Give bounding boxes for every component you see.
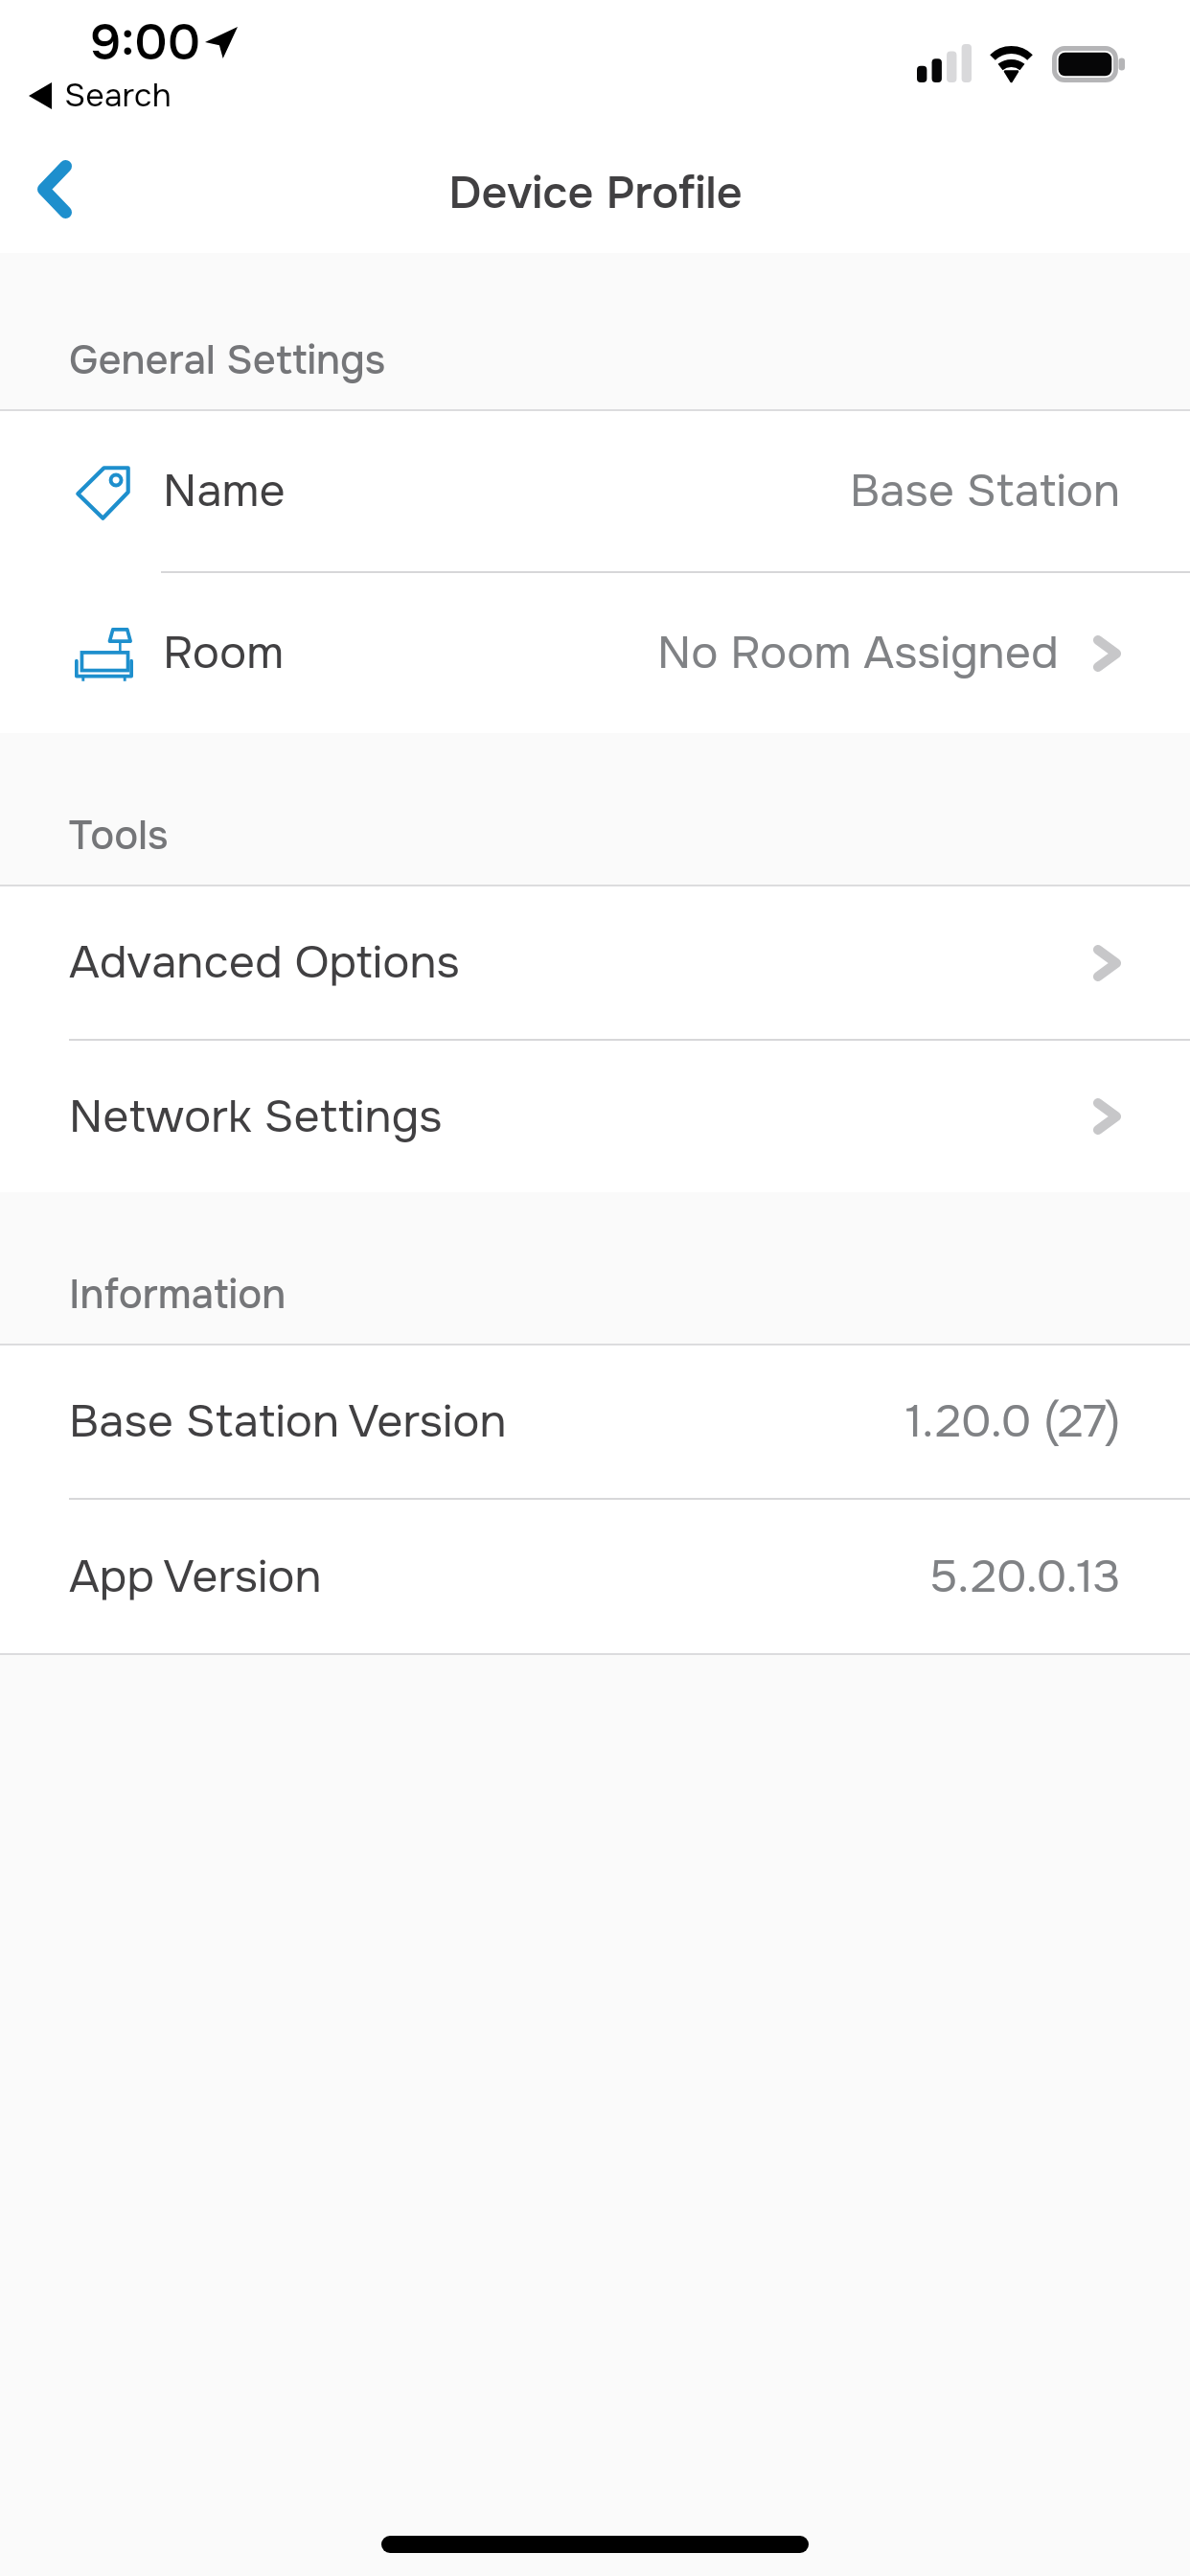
staticText: App Version bbox=[69, 1548, 322, 1606]
staticText: Information bbox=[69, 1269, 286, 1321]
staticText: 1.20.0 (27) bbox=[905, 1392, 1121, 1451]
staticText: 9:00 bbox=[90, 11, 201, 75]
button[interactable]: Back bbox=[0, 126, 107, 253]
staticText: Search bbox=[64, 75, 172, 116]
staticText: Device Profile bbox=[448, 164, 743, 221]
button[interactable]: Room bbox=[0, 573, 1190, 733]
staticText: No Room Assigned bbox=[657, 624, 1059, 682]
button[interactable]: Base Station Version bbox=[0, 1345, 1190, 1500]
staticText: Base Station Version bbox=[69, 1392, 507, 1451]
button[interactable]: Network Settings bbox=[0, 1041, 1190, 1192]
staticText: 5.20.0.13 bbox=[929, 1548, 1121, 1606]
staticText: Name bbox=[163, 462, 286, 520]
button[interactable]: App Version bbox=[0, 1500, 1190, 1653]
button[interactable]: Advanced Options bbox=[0, 886, 1190, 1041]
staticText: Advanced Options bbox=[69, 933, 460, 992]
staticText: General Settings bbox=[69, 334, 386, 386]
button[interactable]: Name bbox=[0, 411, 1190, 573]
staticText: Room bbox=[163, 624, 285, 682]
staticText: Tools bbox=[69, 810, 169, 862]
staticText: Base Station bbox=[850, 462, 1121, 520]
staticText: Network Settings bbox=[69, 1088, 443, 1146]
